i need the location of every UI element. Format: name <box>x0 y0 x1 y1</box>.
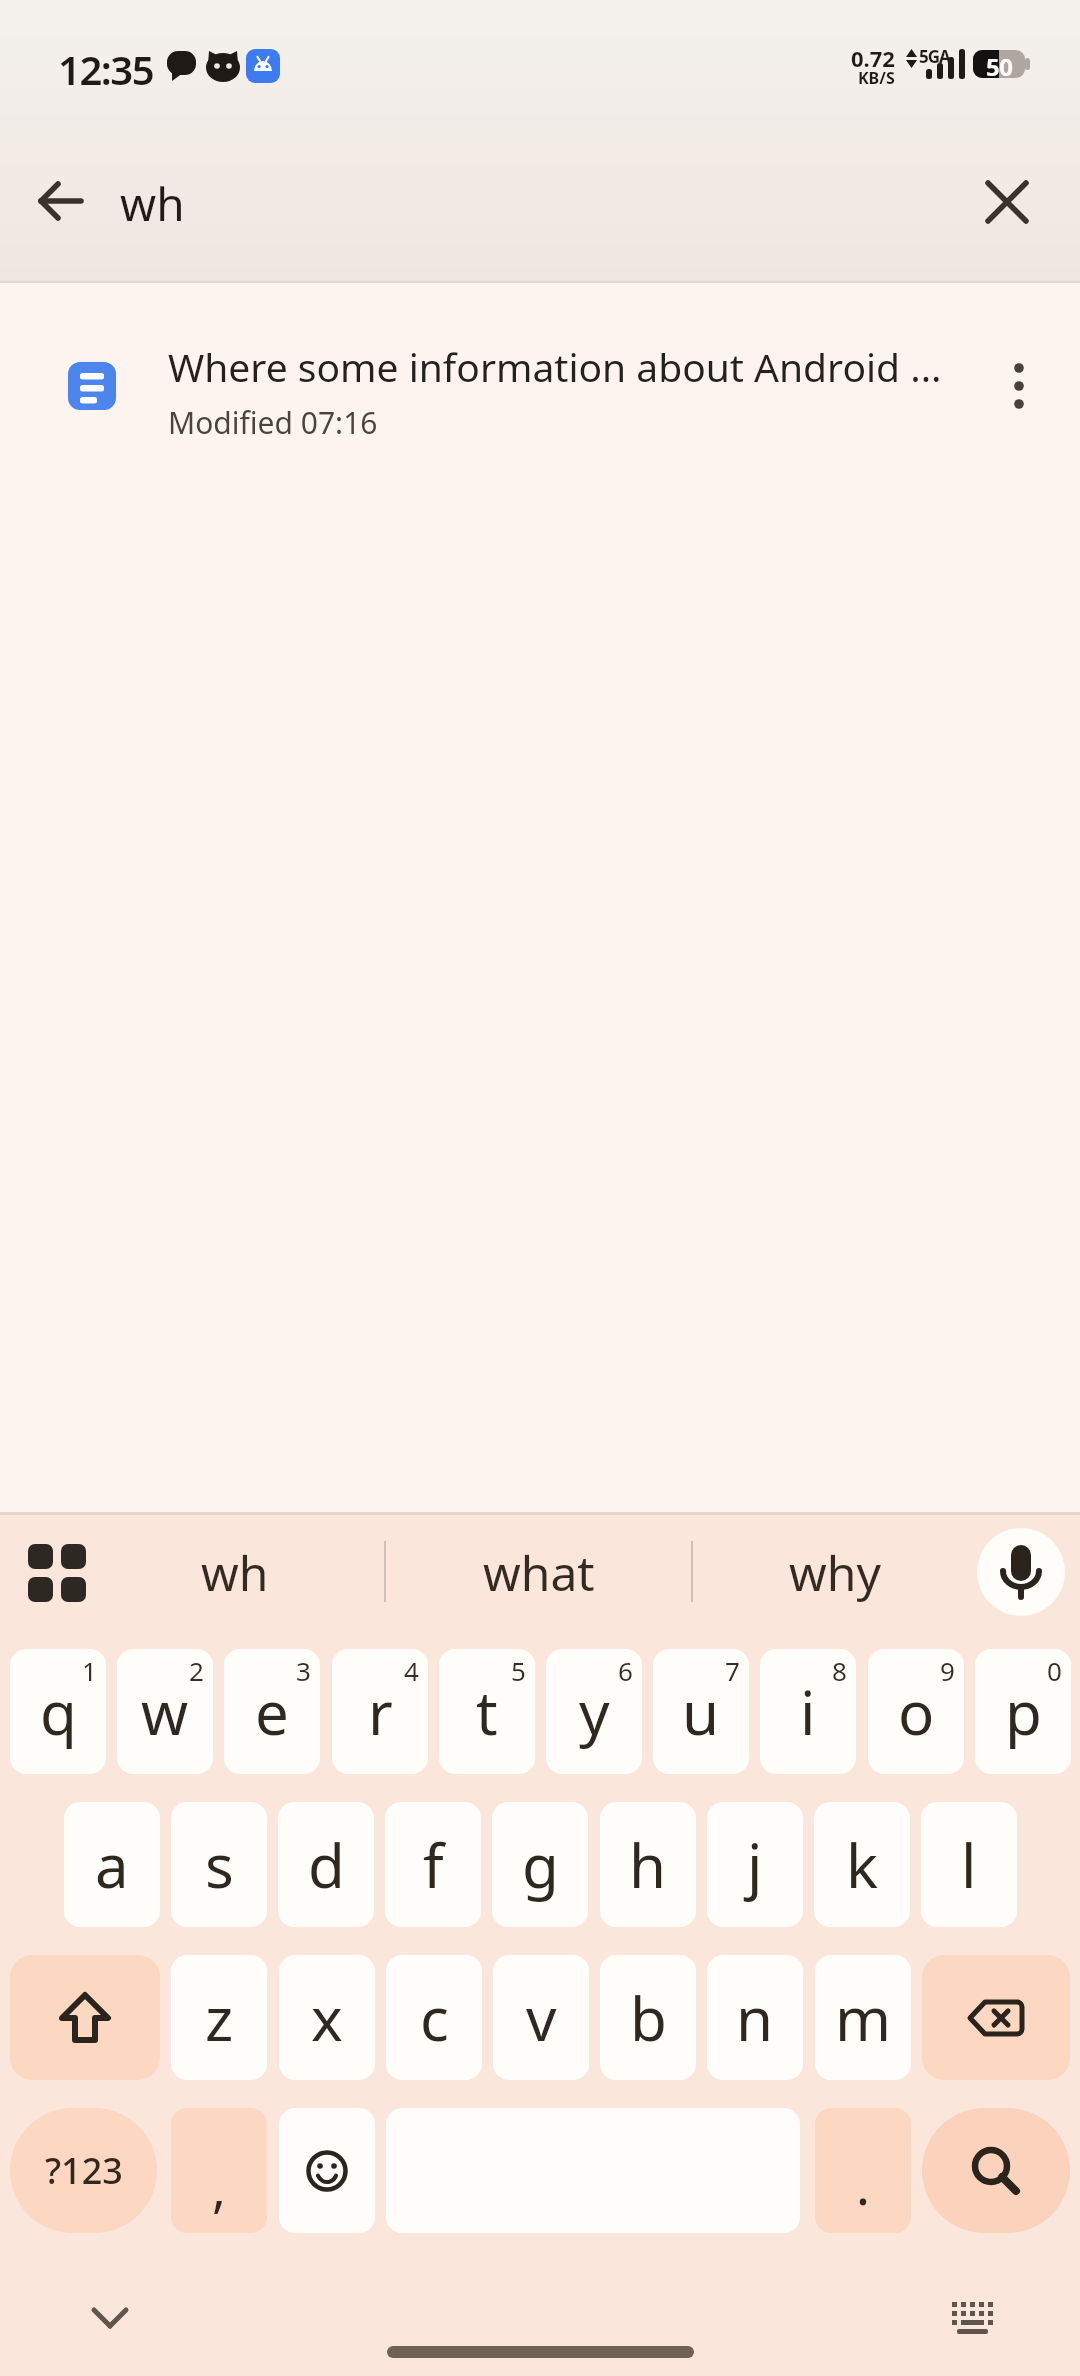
staticText: o <box>898 1671 935 1753</box>
staticText: j <box>747 1824 763 1906</box>
button[interactable]: why <box>693 1540 977 1604</box>
staticText: Where some information about Android ... <box>168 340 942 386</box>
button[interactable]: f <box>385 1802 481 1927</box>
staticText: , <box>212 2151 226 2222</box>
staticText: l <box>961 1824 977 1906</box>
button[interactable]: t <box>439 1649 535 1774</box>
staticText: 7 <box>725 1653 740 1688</box>
staticText: 0 <box>1047 1653 1062 1688</box>
staticText: wh <box>201 1540 269 1604</box>
button[interactable]: r <box>332 1649 428 1774</box>
button[interactable]: ?123 <box>10 2108 157 2233</box>
staticText: n <box>736 1977 774 2059</box>
staticText: b <box>630 1977 667 2059</box>
button[interactable] <box>948 2300 996 2338</box>
staticText: x <box>311 1977 343 2059</box>
button[interactable] <box>10 1955 160 2080</box>
staticText: i <box>800 1671 816 1753</box>
staticText: h <box>629 1824 667 1906</box>
staticText: 50 <box>986 50 1013 78</box>
staticText: c <box>420 1977 449 2059</box>
button[interactable] <box>984 179 1030 225</box>
staticText: w <box>141 1671 189 1753</box>
staticText: what <box>483 1540 595 1604</box>
staticText: 0.72 <box>851 43 895 69</box>
button[interactable] <box>977 1528 1065 1616</box>
staticText: f <box>423 1824 444 1906</box>
button[interactable] <box>88 2296 132 2340</box>
button[interactable]: x <box>279 1955 375 2080</box>
button[interactable]: q <box>10 1649 106 1774</box>
button[interactable]: e <box>224 1649 320 1774</box>
button[interactable]: . <box>815 2108 911 2233</box>
button[interactable] <box>28 1544 86 1602</box>
staticText: r <box>368 1671 393 1753</box>
staticText: z <box>205 1977 234 2059</box>
staticText: . <box>856 2149 870 2220</box>
staticText: 5GA <box>919 45 950 65</box>
button[interactable]: c <box>386 1955 482 2080</box>
button[interactable]: a <box>64 1802 160 1927</box>
button[interactable] <box>38 178 84 224</box>
staticText: Modified 07:16 <box>168 402 378 438</box>
button[interactable]: p <box>975 1649 1071 1774</box>
staticText: why <box>789 1540 881 1604</box>
button[interactable]: m <box>815 1955 911 2080</box>
staticText: v <box>526 1977 557 2059</box>
staticText: p <box>1005 1671 1042 1753</box>
button[interactable]: d <box>278 1802 374 1927</box>
button[interactable]: v <box>493 1955 589 2080</box>
staticText: g <box>522 1824 559 1906</box>
staticText: k <box>846 1824 879 1906</box>
button[interactable]: j <box>707 1802 803 1927</box>
staticText: 6 <box>618 1653 633 1688</box>
staticText: e <box>255 1671 289 1753</box>
staticText: 1 <box>82 1653 97 1688</box>
staticText: 2 <box>189 1653 204 1688</box>
staticText: q <box>40 1671 77 1753</box>
staticText: ?123 <box>45 2146 123 2195</box>
button[interactable]: Where some information about Android ... <box>0 318 1080 450</box>
button[interactable] <box>279 2108 375 2233</box>
button[interactable]: z <box>171 1955 267 2080</box>
staticText: wh <box>120 172 185 230</box>
button[interactable] <box>922 2108 1070 2233</box>
staticText: s <box>205 1824 234 1906</box>
staticText: 8 <box>832 1653 847 1688</box>
button[interactable]: what <box>386 1540 691 1604</box>
staticText: 5 <box>511 1653 526 1688</box>
button[interactable]: k <box>814 1802 910 1927</box>
button[interactable]: wh <box>86 1540 384 1604</box>
button[interactable] <box>922 1955 1070 2080</box>
staticText: d <box>308 1824 345 1906</box>
button[interactable]: g <box>492 1802 588 1927</box>
staticText: 3 <box>296 1653 311 1688</box>
button[interactable]: y <box>546 1649 642 1774</box>
staticText: 4 <box>404 1653 419 1688</box>
button[interactable]: b <box>600 1955 696 2080</box>
button[interactable]: i <box>760 1649 856 1774</box>
button[interactable]: w <box>117 1649 213 1774</box>
button[interactable]: u <box>653 1649 749 1774</box>
button[interactable] <box>995 354 1043 418</box>
button[interactable]: , <box>171 2108 267 2233</box>
button[interactable]: n <box>707 1955 803 2080</box>
staticText: u <box>682 1671 720 1753</box>
staticText: m <box>835 1977 892 2059</box>
staticText: a <box>95 1824 129 1906</box>
button[interactable]: h <box>600 1802 696 1927</box>
button[interactable]: o <box>868 1649 964 1774</box>
staticText: 9 <box>940 1653 955 1688</box>
staticText: 12:35 <box>58 42 154 86</box>
staticText: t <box>476 1671 498 1753</box>
button[interactable]: l <box>921 1802 1017 1927</box>
staticText: y <box>579 1671 610 1753</box>
staticText: KB/S <box>858 67 895 87</box>
button[interactable]: s <box>171 1802 267 1927</box>
